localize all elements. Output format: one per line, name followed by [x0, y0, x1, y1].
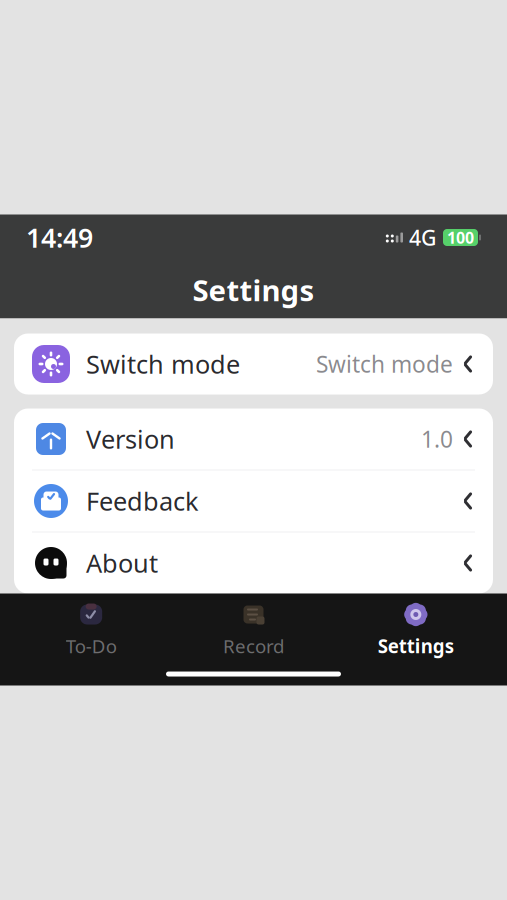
staticText: Feedback [86, 484, 199, 518]
staticText: About [86, 546, 158, 580]
staticText: 14:49 [26, 220, 93, 255]
staticText: Settings [192, 270, 314, 309]
button[interactable]: Record [172, 593, 335, 662]
button[interactable]: About [14, 532, 493, 593]
button[interactable]: Settings [335, 593, 497, 662]
staticText: Record [223, 633, 284, 658]
staticText: Switch mode [316, 349, 453, 379]
button[interactable]: To-Do [10, 593, 172, 662]
staticText: Settings [378, 633, 454, 658]
button[interactable]: Feedback [14, 470, 493, 531]
staticText: Switch mode [86, 347, 240, 381]
button[interactable]: Version [14, 408, 493, 469]
staticText: To-Do [66, 633, 117, 658]
staticText: 100 [447, 227, 474, 248]
staticText: Version [86, 422, 175, 456]
button[interactable]: Switch mode [14, 333, 493, 394]
staticText: 4G [409, 223, 437, 252]
staticText: 1.0 [421, 424, 453, 454]
